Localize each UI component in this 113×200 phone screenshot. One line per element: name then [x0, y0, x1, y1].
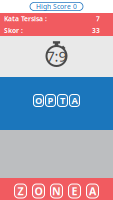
button[interactable]: N [50, 184, 62, 198]
staticText: Z [17, 184, 23, 198]
staticText: N [52, 184, 61, 198]
staticText: 7:9 [46, 46, 66, 66]
button[interactable]: High Score 0 [30, 2, 83, 10]
staticText: O [34, 184, 42, 198]
staticText: Kata Tersisa : [4, 14, 47, 23]
button[interactable]: P [45, 94, 55, 106]
button[interactable]: A [86, 184, 98, 198]
staticText: 7 [96, 14, 100, 23]
staticText: Skor : [4, 26, 23, 35]
button[interactable]: A [69, 94, 79, 106]
staticText: A [89, 184, 96, 198]
staticText: T [60, 94, 65, 107]
staticText: O [35, 94, 42, 107]
button[interactable]: Z [14, 184, 26, 198]
staticText: High Score 0 [36, 2, 77, 11]
staticText: 33 [92, 26, 100, 35]
staticText: A [71, 94, 77, 107]
button[interactable]: E [68, 184, 80, 198]
button[interactable]: O [33, 94, 43, 106]
staticText: P [47, 94, 53, 107]
staticText: E [71, 184, 77, 198]
button[interactable]: O [32, 184, 44, 198]
button[interactable]: T [57, 94, 67, 106]
